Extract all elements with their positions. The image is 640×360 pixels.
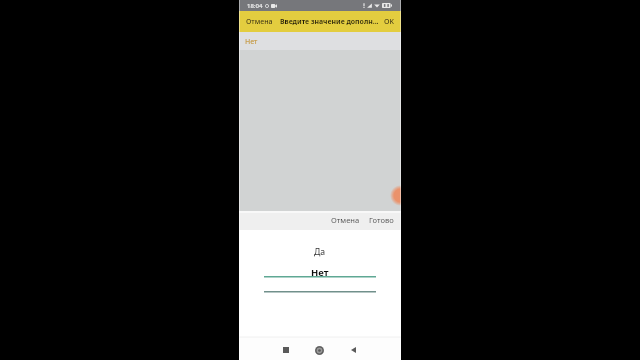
staticText: Отмена: [246, 17, 273, 27]
staticText: Нет: [311, 266, 329, 279]
button[interactable]: Recents: [276, 340, 296, 360]
staticText: Готово: [369, 215, 394, 225]
staticText: OK: [384, 17, 394, 27]
staticText: Отмена: [331, 215, 360, 225]
staticText: Нет: [245, 37, 258, 47]
button[interactable]: OK: [384, 17, 394, 27]
staticText: Введите значение дополн...: [280, 17, 379, 26]
button[interactable]: Back: [343, 340, 363, 360]
button[interactable]: Готово: [369, 215, 394, 225]
button[interactable]: Add: [390, 185, 401, 206]
staticText: 18:04: [247, 2, 263, 10]
staticText: Да: [314, 246, 326, 258]
button[interactable]: Отмена: [331, 215, 360, 225]
button[interactable]: Отмена: [246, 17, 273, 27]
button[interactable]: Home: [309, 340, 329, 360]
